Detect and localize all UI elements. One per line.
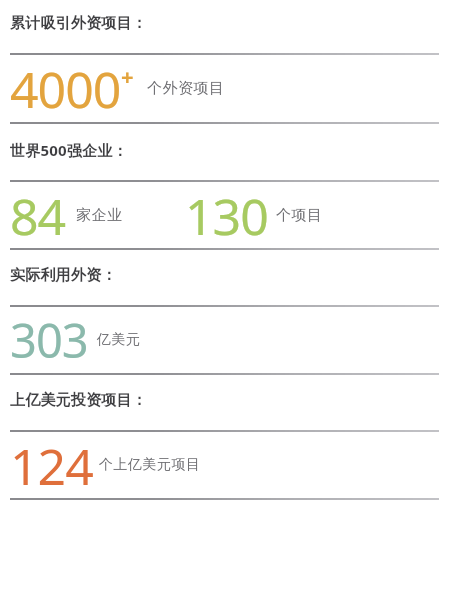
staticText: 亿美元: [97, 331, 141, 349]
staticText: 累计吸引外资项目：: [10, 14, 147, 33]
staticText: 84: [10, 182, 66, 248]
staticText: 4000: [10, 55, 121, 122]
staticText: 家企业: [76, 206, 123, 225]
staticText: 上亿美元投资项目：: [10, 391, 147, 410]
staticText: 世界500强企业：: [10, 140, 128, 160]
staticText: +: [121, 61, 134, 91]
staticText: 130: [185, 182, 268, 248]
button[interactable]: 上亿美元投资项目：: [10, 375, 439, 500]
button[interactable]: 实际利用外资：: [10, 250, 439, 375]
staticText: 个外资项目: [147, 79, 225, 98]
button[interactable]: 世界500强企业：: [10, 124, 439, 250]
staticText: 个上亿美元项目: [99, 456, 201, 474]
staticText: 个项目: [276, 206, 323, 225]
staticText: 实际利用外资：: [10, 266, 117, 285]
staticText: 124: [10, 432, 93, 498]
staticText: 303: [10, 308, 88, 372]
button[interactable]: 累计吸引外资项目：: [10, 0, 439, 124]
